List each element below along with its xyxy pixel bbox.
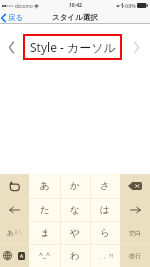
staticText: 戻る [8, 13, 24, 22]
other: Wi-Fi [34, 3, 39, 8]
button[interactable]: Next style [122, 34, 150, 60]
button[interactable]: ^_^ [29, 244, 60, 267]
button[interactable]: 改行 [120, 244, 150, 267]
staticText: 空白 [129, 229, 141, 237]
other: Back [1, 14, 6, 22]
other: Cursor left [9, 206, 20, 214]
staticText: わ [70, 250, 80, 262]
staticText: 改行 [129, 252, 141, 260]
button[interactable]: ま [29, 221, 60, 244]
other: Cursor right [130, 206, 141, 214]
staticText: docomo [15, 3, 33, 9]
staticText: ま [40, 227, 50, 239]
button[interactable]: わ [60, 244, 90, 267]
other: Dictation [18, 252, 25, 260]
staticText: A1 [14, 228, 22, 237]
staticText: あ [7, 229, 14, 237]
other: Switch keyboard [3, 251, 12, 260]
staticText: スタイル選択 [52, 13, 98, 22]
staticText: な [70, 204, 80, 216]
button[interactable]: や [60, 221, 90, 244]
button[interactable]: 、。?! [90, 244, 120, 267]
button[interactable]: あ [29, 174, 60, 198]
button[interactable]: さ [90, 174, 120, 198]
button[interactable]: 空白 [120, 221, 150, 244]
button[interactable]: ら [90, 221, 120, 244]
button[interactable]: な [60, 198, 90, 221]
button[interactable]: Cursor left [0, 198, 29, 221]
staticText: か [70, 180, 80, 192]
button[interactable]: Cursor right [120, 198, 150, 221]
button[interactable]: Style - カーソル [23, 34, 122, 60]
staticText: 68% [125, 2, 136, 9]
staticText: は [100, 204, 110, 216]
button[interactable]: は [90, 198, 120, 221]
button[interactable]: Switch keyboard [0, 244, 29, 267]
staticText: ^_^ [39, 251, 51, 261]
staticText: A [20, 253, 24, 260]
staticText: ら [100, 227, 110, 239]
staticText: た [40, 204, 50, 216]
button[interactable]: Undo [0, 174, 29, 198]
staticText: あ [40, 180, 50, 192]
button[interactable]: Back [1, 11, 24, 24]
staticText: や [70, 227, 80, 239]
staticText: Style - カーソル [30, 39, 116, 55]
other: Undo [9, 181, 20, 191]
staticText: 10:42 [69, 2, 82, 9]
button[interactable]: Delete [120, 174, 150, 198]
button[interactable]: Previous style [0, 34, 23, 60]
button[interactable]: あ [0, 221, 29, 244]
button[interactable]: た [29, 198, 60, 221]
other: Delete [128, 182, 142, 190]
staticText: 、。?! [98, 252, 113, 260]
staticText: さ [100, 180, 110, 192]
button[interactable]: か [60, 174, 90, 198]
